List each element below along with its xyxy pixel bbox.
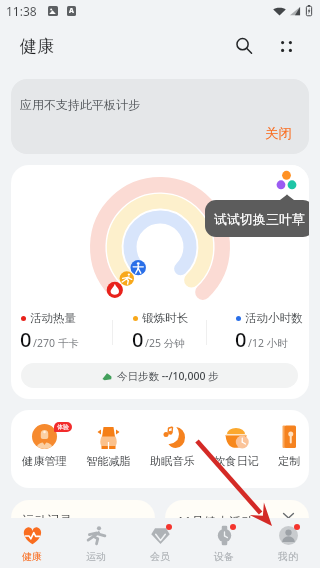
button[interactable]: 会员 — [128, 518, 192, 568]
button[interactable]: 11月健走活动 — [165, 500, 309, 560]
button[interactable]: Switch to clover view — [266, 165, 309, 191]
staticText: 会员 — [150, 550, 170, 563]
button[interactable]: 饮食日记 — [204, 424, 268, 468]
staticText: 活动热量 — [30, 311, 76, 325]
button[interactable]: 助眠音乐 — [140, 424, 204, 468]
button[interactable]: 体验 — [12, 424, 76, 468]
staticText: 试试切换三叶草 — [214, 211, 305, 227]
staticText: 定制 — [278, 454, 301, 468]
button[interactable]: Collapse — [277, 504, 299, 526]
button[interactable]: 今日步数 --/10,000 步 — [21, 363, 298, 388]
staticText: /12 小时 — [248, 336, 288, 350]
staticText: /25 分钟 — [145, 336, 185, 350]
button[interactable]: 锻炼时长 — [133, 311, 188, 353]
button[interactable]: Search — [224, 26, 264, 66]
button[interactable]: 我的 — [256, 518, 320, 568]
staticText: /270 千卡 — [33, 336, 79, 350]
staticText: 应用不支持此平板计步 — [20, 97, 140, 112]
staticText: 活动小时数 — [245, 311, 303, 325]
button[interactable]: 关闭 — [254, 119, 303, 148]
staticText: 饮食日记 — [214, 454, 259, 468]
staticText: 关闭 — [265, 125, 292, 142]
staticText: 0 — [20, 326, 32, 353]
button[interactable]: More options — [266, 26, 306, 66]
button[interactable]: 定制 — [268, 424, 309, 468]
button[interactable]: 运动记录 — [11, 500, 155, 560]
button[interactable]: 活动小时数 — [236, 311, 303, 353]
button[interactable]: 智能减脂 — [76, 424, 140, 468]
staticText: 0 — [132, 326, 144, 353]
staticText: 11:38 — [6, 3, 37, 19]
staticText: 锻炼时长 — [142, 311, 188, 325]
button[interactable]: 活动热量 — [21, 311, 79, 353]
button[interactable]: 运动 — [64, 518, 128, 568]
button[interactable]: 健康 — [0, 518, 64, 568]
staticText: 今日步数 --/10,000 步 — [117, 369, 219, 383]
button[interactable]: 设备 — [192, 518, 256, 568]
staticText: 0 — [235, 326, 247, 353]
staticText: 11月健走活动 — [177, 513, 254, 530]
staticText: 设备 — [214, 550, 234, 563]
staticText: 助眠音乐 — [150, 454, 195, 468]
staticText: A — [69, 6, 74, 16]
staticText: 智能减脂 — [86, 454, 131, 468]
staticText: 健康 — [20, 36, 54, 57]
staticText: 健康管理 — [22, 454, 67, 468]
staticText: 运动 — [86, 550, 106, 563]
staticText: 健康 — [22, 550, 42, 563]
staticText: 我的 — [278, 550, 298, 563]
staticText: 运动记录 — [22, 513, 72, 529]
staticText: 体验 — [57, 423, 69, 431]
